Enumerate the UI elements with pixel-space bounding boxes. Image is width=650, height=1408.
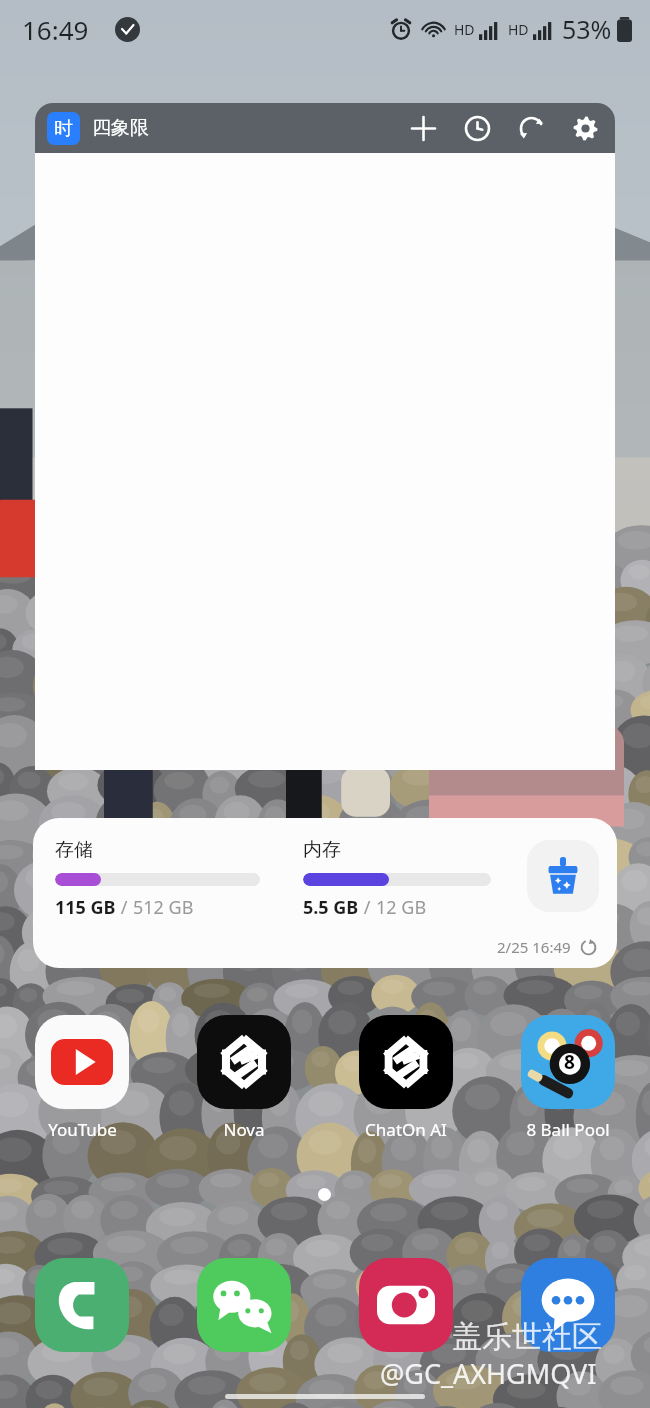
button[interactable]: Settings [569,112,601,144]
staticText: 8 [564,1049,575,1075]
staticText: Nova [223,1118,265,1141]
staticText: 5.5 GB [303,895,359,920]
button[interactable]: 2/25 16:49 [497,937,597,957]
staticText: 盖乐世社区 [452,1318,602,1356]
staticText: 12 GB [376,895,427,920]
button[interactable]: Refresh [515,112,547,144]
staticText: 存储 [55,838,93,862]
button[interactable]: 时 [35,103,615,770]
other: Refresh [580,939,597,956]
staticText: ChatOn AI [365,1118,447,1141]
staticText: 53% [562,12,612,46]
button[interactable]: Add [407,112,439,144]
staticText: 四象限 [92,116,149,140]
staticText: @GC_AXHGMQVI [380,1355,597,1392]
button[interactable]: ChatOn AI [352,1015,460,1141]
button[interactable]: Messages [514,1258,622,1352]
button[interactable]: YouTube [28,1015,136,1141]
staticText: 115 GB [55,895,116,920]
staticText: 时 [54,117,73,141]
staticText: 2/25 16:49 [497,937,571,957]
staticText: YouTube [48,1118,117,1141]
button[interactable]: 存储 [33,818,617,968]
staticText: HD [508,20,529,39]
staticText: 512 GB [133,895,194,920]
staticText: / [116,895,133,920]
staticText: 16:49 [22,12,89,47]
staticText: / [359,895,376,920]
button[interactable]: WeChat [190,1258,298,1352]
button[interactable]: History [461,112,493,144]
button[interactable]: 8 [514,1015,622,1141]
button[interactable]: Nova [190,1015,298,1141]
staticText: 内存 [303,838,341,862]
staticText: 8 Ball Pool [526,1118,610,1141]
staticText: HD [454,20,475,39]
button[interactable]: Camera [352,1258,460,1352]
button[interactable]: Phone [28,1258,136,1352]
button[interactable]: Clean [527,840,599,912]
